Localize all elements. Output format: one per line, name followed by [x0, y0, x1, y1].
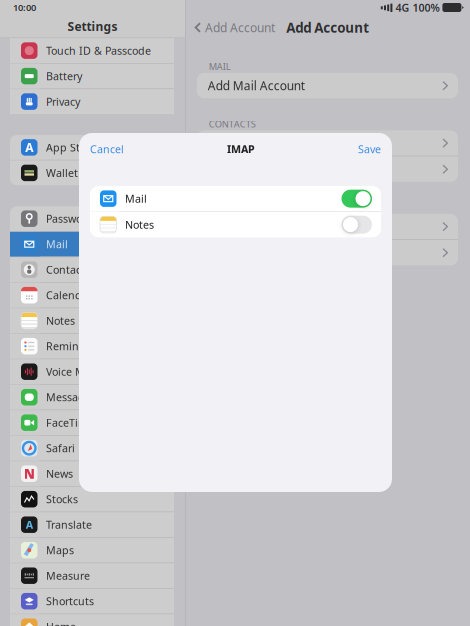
button[interactable]: Calendar	[10, 283, 174, 308]
staticText: Add Account	[286, 19, 369, 36]
staticText: Mail	[46, 237, 68, 251]
button[interactable]: Measure	[10, 563, 174, 588]
staticText: 4G	[395, 0, 409, 15]
staticText: Maps	[46, 543, 74, 557]
button[interactable]: N	[10, 461, 174, 486]
button[interactable]: Save	[347, 137, 392, 161]
button[interactable]: Maps	[10, 538, 174, 563]
staticText: Voice Memos	[46, 365, 112, 379]
staticText: CONTACTS	[209, 118, 256, 130]
staticText: Add Account	[205, 19, 275, 35]
staticText: FaceTime	[46, 416, 94, 430]
staticText: Safari	[46, 441, 75, 455]
staticText: Measure	[46, 569, 90, 583]
button[interactable]: Add Calendar Account	[197, 214, 458, 239]
button[interactable]: Battery	[10, 64, 174, 88]
button[interactable]: Messages	[10, 385, 174, 410]
staticText: Wallet & Apple Pay	[46, 166, 142, 180]
staticText: Mail	[125, 192, 147, 206]
staticText: Add Mail Account	[208, 78, 305, 94]
staticText: 100%	[412, 0, 439, 15]
staticText: Calendar	[46, 288, 92, 302]
staticText: CALENDARS	[209, 201, 262, 214]
button[interactable]: Shortcuts	[10, 589, 174, 614]
staticText: Stocks	[46, 492, 78, 506]
button[interactable]: Other	[197, 156, 458, 182]
staticText: News	[46, 467, 73, 481]
button[interactable]: Reminders	[10, 334, 174, 359]
button[interactable]: Add Contacts Account	[197, 130, 458, 156]
staticText: Privacy	[46, 94, 80, 109]
staticText: Notes	[125, 218, 154, 232]
staticText: IMAP	[227, 142, 255, 156]
button[interactable]: Mail	[90, 186, 381, 211]
button[interactable]: Touch ID & Passcode	[10, 38, 174, 63]
button[interactable]: Privacy	[10, 89, 174, 114]
staticText: Save	[358, 142, 381, 156]
staticText: N	[24, 465, 35, 482]
button[interactable]: A	[10, 135, 174, 160]
staticText: 10:00	[13, 1, 36, 14]
button[interactable]: Notes	[90, 212, 381, 237]
button[interactable]: Add Subscribed Calendar	[197, 240, 458, 265]
button[interactable]: Cancel	[79, 137, 135, 161]
staticText: Touch ID & Passcode	[46, 43, 151, 58]
button[interactable]: Safari	[10, 436, 174, 461]
button[interactable]: A	[10, 512, 174, 537]
button[interactable]: Passwords	[10, 206, 174, 231]
button[interactable]: Contacts	[10, 257, 174, 282]
button[interactable]: FaceTime	[10, 410, 174, 435]
staticText: Home	[46, 620, 76, 626]
button[interactable]: Home	[10, 614, 174, 626]
staticText: Battery	[46, 69, 82, 83]
staticText: Passwords	[46, 212, 98, 226]
staticText: Cancel	[90, 142, 124, 156]
button[interactable]: Notes	[10, 308, 174, 333]
staticText: MAIL	[209, 60, 231, 73]
staticText: A	[25, 139, 33, 155]
button[interactable]: Voice Memos	[10, 359, 174, 384]
button[interactable]: Add Mail Account	[197, 73, 458, 98]
staticText: Shortcuts	[46, 594, 94, 608]
button[interactable]: Add Account	[186, 15, 275, 39]
staticText: Contacts	[46, 263, 90, 277]
staticText: Messages	[46, 390, 96, 404]
staticText: App Store	[46, 140, 96, 154]
staticText: Add Contacts Account	[208, 135, 330, 151]
button[interactable]: Stocks	[10, 487, 174, 512]
button[interactable]: Wallet & Apple Pay	[10, 160, 174, 185]
staticText: Reminders	[46, 339, 101, 353]
staticText: Notes	[46, 314, 75, 328]
staticText: Settings	[67, 18, 117, 34]
staticText: A	[26, 518, 33, 532]
staticText: Translate	[46, 518, 92, 532]
button[interactable]: Mail	[10, 232, 174, 257]
